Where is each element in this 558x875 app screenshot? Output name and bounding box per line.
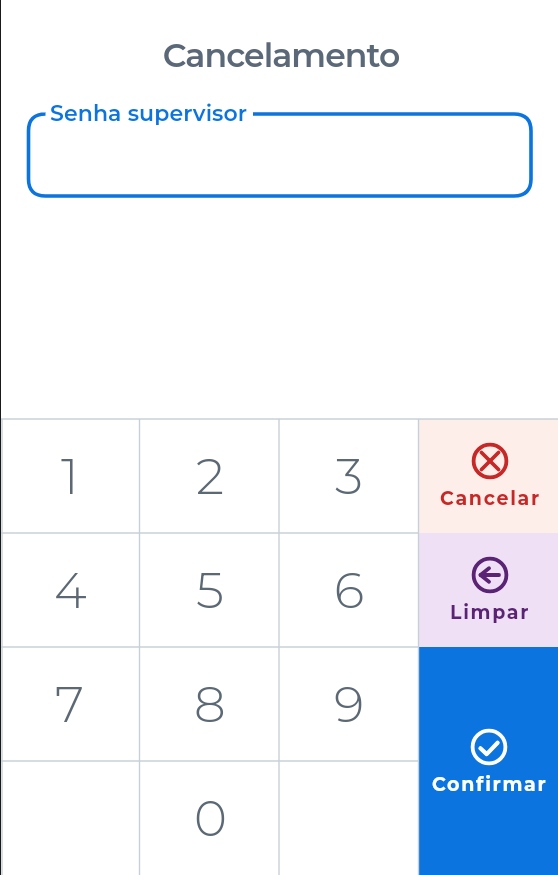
staticText: Cancelar [440, 487, 541, 510]
button[interactable] [279, 761, 419, 875]
button[interactable]: 1 [0, 419, 140, 533]
button[interactable]: 5 [140, 533, 280, 647]
other: Confirmar [470, 728, 508, 766]
button[interactable]: 2 [140, 419, 280, 533]
button[interactable]: 9 [279, 647, 419, 761]
staticText: 5 [196, 560, 224, 621]
button[interactable]: 7 [0, 647, 140, 761]
button[interactable]: 0 [140, 761, 280, 875]
staticText: Limpar [450, 601, 531, 624]
other: Cancelar [471, 442, 509, 480]
staticText: 8 [194, 674, 226, 735]
button[interactable]: Confirmar [419, 647, 558, 875]
staticText: 2 [196, 446, 225, 507]
button[interactable]: 8 [140, 647, 280, 761]
button[interactable]: 3 [279, 419, 419, 533]
button[interactable]: 4 [0, 533, 140, 647]
staticText: 4 [54, 560, 87, 621]
button[interactable]: Limpar [419, 533, 558, 647]
staticText: Senha supervisor [50, 100, 248, 127]
staticText: 3 [335, 446, 363, 507]
staticText: 6 [334, 560, 365, 621]
staticText: 7 [55, 674, 85, 735]
button[interactable]: 6 [279, 533, 419, 647]
staticText: Confirmar [432, 773, 548, 796]
staticText: 9 [334, 674, 365, 735]
staticText: 1 [61, 446, 79, 507]
button[interactable]: Cancelar [419, 419, 558, 533]
staticText: Cancelamento [2, 35, 558, 75]
staticText: 0 [194, 788, 227, 849]
button[interactable] [0, 761, 140, 875]
other: Limpar [471, 556, 509, 594]
